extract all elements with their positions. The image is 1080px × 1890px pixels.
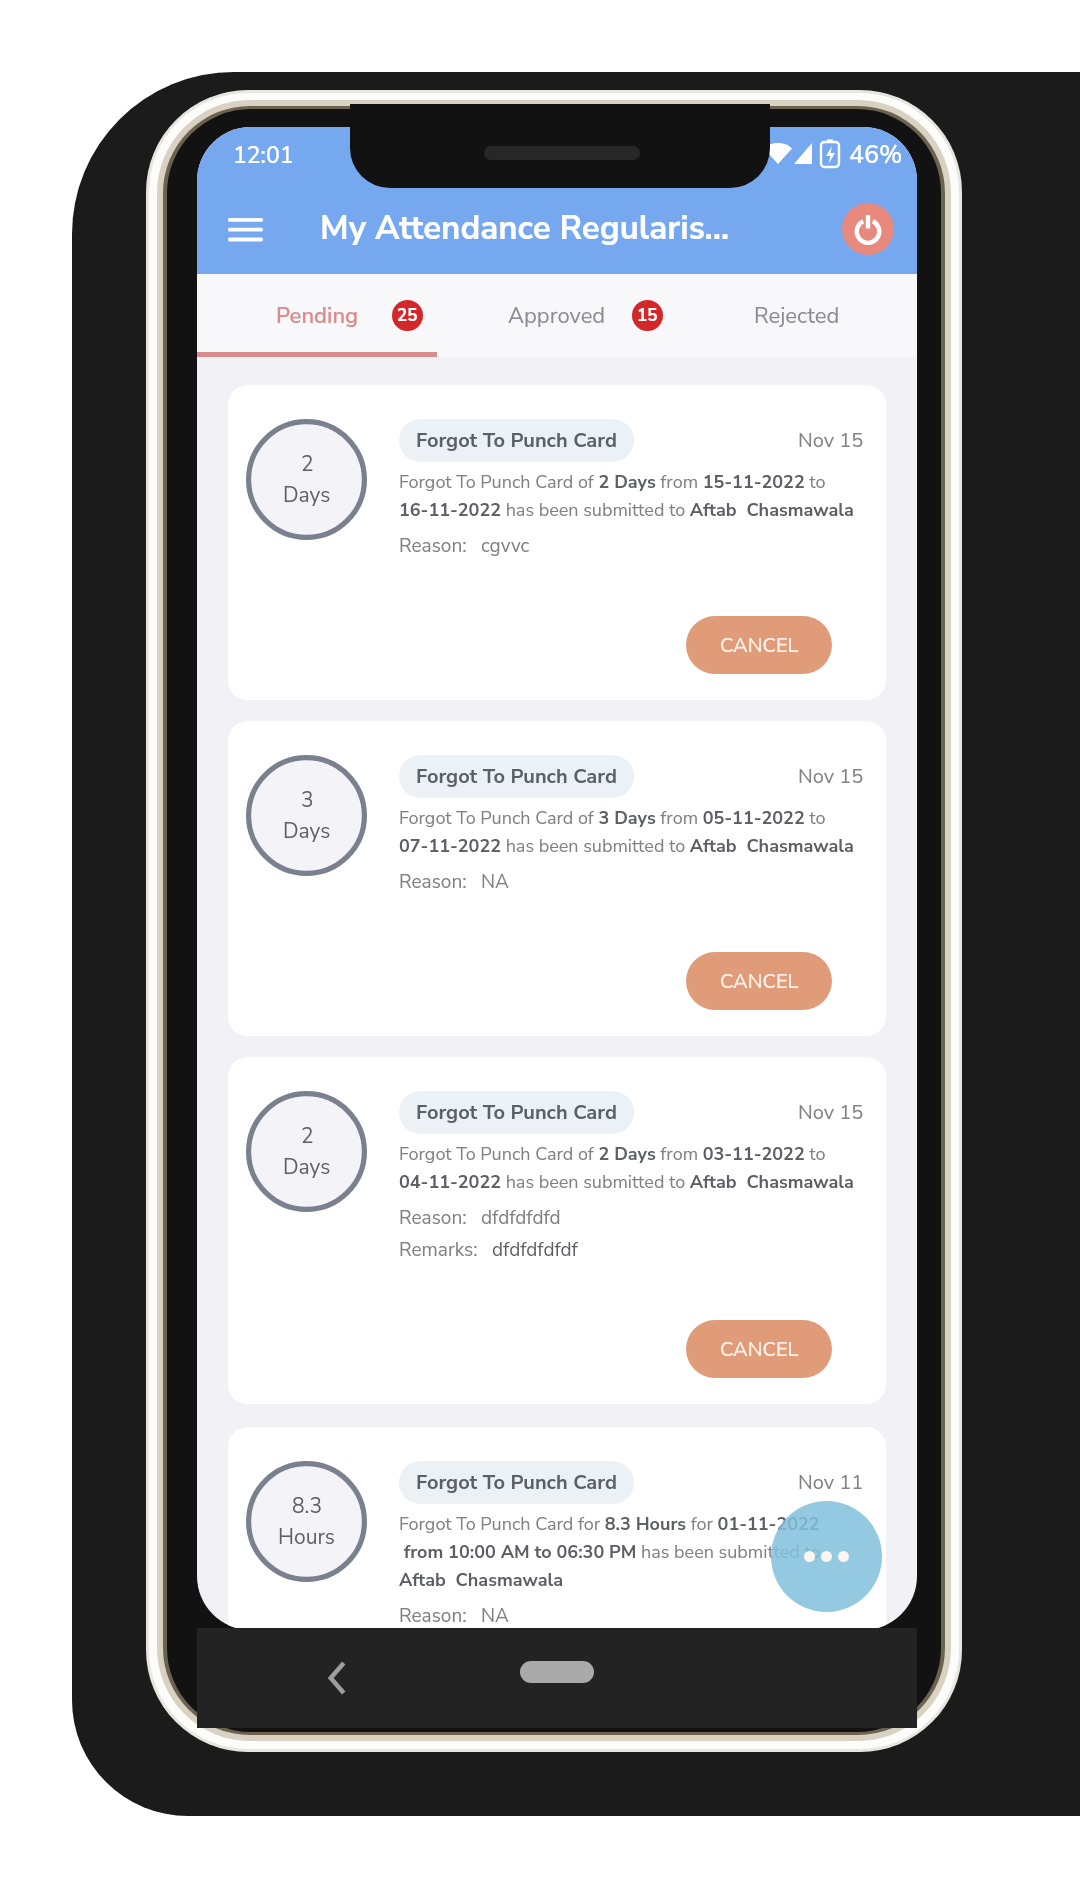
staticText: NA	[481, 869, 509, 895]
button[interactable]: CANCEL	[686, 616, 832, 674]
button[interactable]: Forgot To Punch Card	[399, 1091, 634, 1134]
button[interactable]: Forgot To Punch Card	[399, 755, 634, 798]
staticText: 2	[301, 450, 314, 479]
button[interactable]: 3	[228, 721, 886, 1036]
staticText: Forgot To Punch Card for 8.3 Hours for 0…	[399, 1512, 821, 1592]
staticText: Rejected	[754, 301, 840, 331]
staticText: Approved	[508, 301, 606, 331]
staticText: 46%	[849, 138, 903, 172]
button[interactable]: CANCEL	[686, 1320, 832, 1378]
staticText: Remarks:	[399, 1237, 478, 1263]
staticText: NA	[481, 1603, 509, 1629]
button[interactable]: Approved	[437, 274, 677, 357]
staticText: Forgot To Punch Card	[416, 1099, 617, 1126]
button[interactable]: CANCEL	[686, 952, 832, 1010]
staticText: Pending	[276, 301, 359, 331]
staticText: CANCEL	[720, 632, 799, 659]
button[interactable]: 8.3	[228, 1427, 886, 1630]
staticText: Days	[283, 817, 331, 846]
staticText: 15	[637, 304, 658, 327]
staticText: Nov 15	[798, 1099, 864, 1126]
button[interactable]: Pending	[197, 274, 437, 357]
button[interactable]: More options	[771, 1501, 882, 1612]
staticText: 3	[301, 786, 314, 815]
staticText: CANCEL	[720, 968, 799, 995]
staticText: Forgot To Punch Card	[416, 763, 617, 790]
button[interactable]: Home	[520, 1661, 594, 1683]
button[interactable]: Forgot To Punch Card	[399, 1461, 634, 1504]
staticText: Forgot To Punch Card	[416, 1469, 617, 1496]
staticText: Nov 15	[798, 763, 864, 790]
staticText: Days	[283, 1153, 331, 1182]
staticText: Forgot To Punch Card of 2 Days from 15-1…	[399, 470, 864, 522]
staticText: Forgot To Punch Card	[416, 427, 617, 454]
button[interactable]: Rejected	[677, 274, 917, 357]
staticText: 8.3	[292, 1492, 322, 1521]
staticText: Hours	[278, 1523, 335, 1552]
staticText: Reason:	[399, 869, 467, 895]
staticText: Reason:	[399, 1205, 467, 1231]
staticText: My Attendance Regularis…	[320, 206, 730, 251]
button[interactable]: 2	[228, 385, 886, 700]
staticText: Forgot To Punch Card of 3 Days from 05-1…	[399, 806, 864, 858]
staticText: Nov 11	[798, 1469, 864, 1496]
button[interactable]: Open navigation drawer	[210, 194, 280, 264]
staticText: Reason:	[399, 1603, 467, 1629]
button[interactable]: Back	[325, 1659, 351, 1697]
staticText: dfdfdfdfd	[481, 1205, 561, 1231]
button[interactable]: 2	[228, 1057, 886, 1404]
staticText: Forgot To Punch Card of 2 Days from 03-1…	[399, 1142, 864, 1194]
staticText: 25	[397, 304, 418, 327]
staticText: 12:01	[233, 140, 294, 171]
staticText: Reason:	[399, 533, 467, 559]
staticText: dfdfdfdfdf	[492, 1237, 578, 1263]
staticText: 2	[301, 1122, 314, 1151]
staticText: cgvvc	[481, 533, 530, 559]
button[interactable]: Logout	[842, 203, 894, 255]
staticText: Nov 15	[798, 427, 864, 454]
staticText: Days	[283, 481, 331, 510]
button[interactable]: Forgot To Punch Card	[399, 419, 634, 462]
staticText: CANCEL	[720, 1336, 799, 1363]
